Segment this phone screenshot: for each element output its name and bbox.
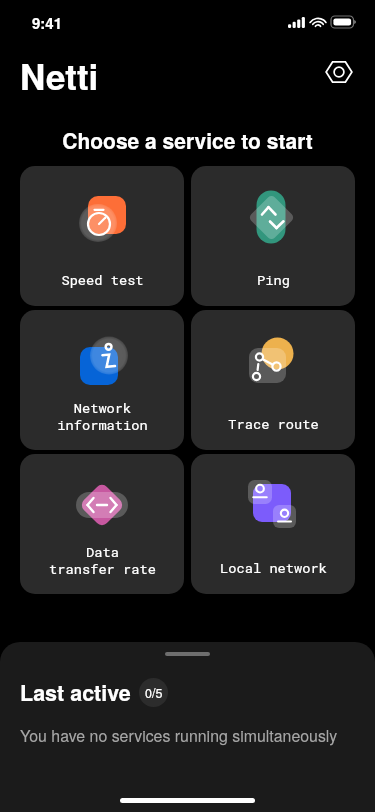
staticText: Choose a service to start [0, 125, 375, 155]
button[interactable]: Trace route [191, 310, 355, 450]
staticText: Last active [20, 677, 131, 708]
staticText: You have no services running simultaneou… [20, 724, 338, 747]
staticText: Data transfer rate [49, 543, 156, 577]
button[interactable]: Local network [191, 454, 355, 594]
button[interactable]: Ping [191, 166, 355, 306]
staticText: Ping [257, 271, 290, 289]
button[interactable]: Data transfer rate [20, 454, 184, 594]
staticText: Trace route [228, 415, 319, 433]
staticText: 0/5 [145, 684, 163, 702]
button[interactable]: Settings [322, 55, 356, 89]
staticText: Network information [57, 399, 148, 433]
staticText: Speed test [61, 271, 144, 289]
button[interactable]: Network information [20, 310, 184, 450]
button[interactable]: Speed test [20, 166, 184, 306]
staticText: Local network [220, 559, 327, 577]
button[interactable]: Last active [0, 642, 375, 812]
staticText: 9:41 [32, 12, 63, 33]
staticText: Netti [20, 51, 99, 101]
